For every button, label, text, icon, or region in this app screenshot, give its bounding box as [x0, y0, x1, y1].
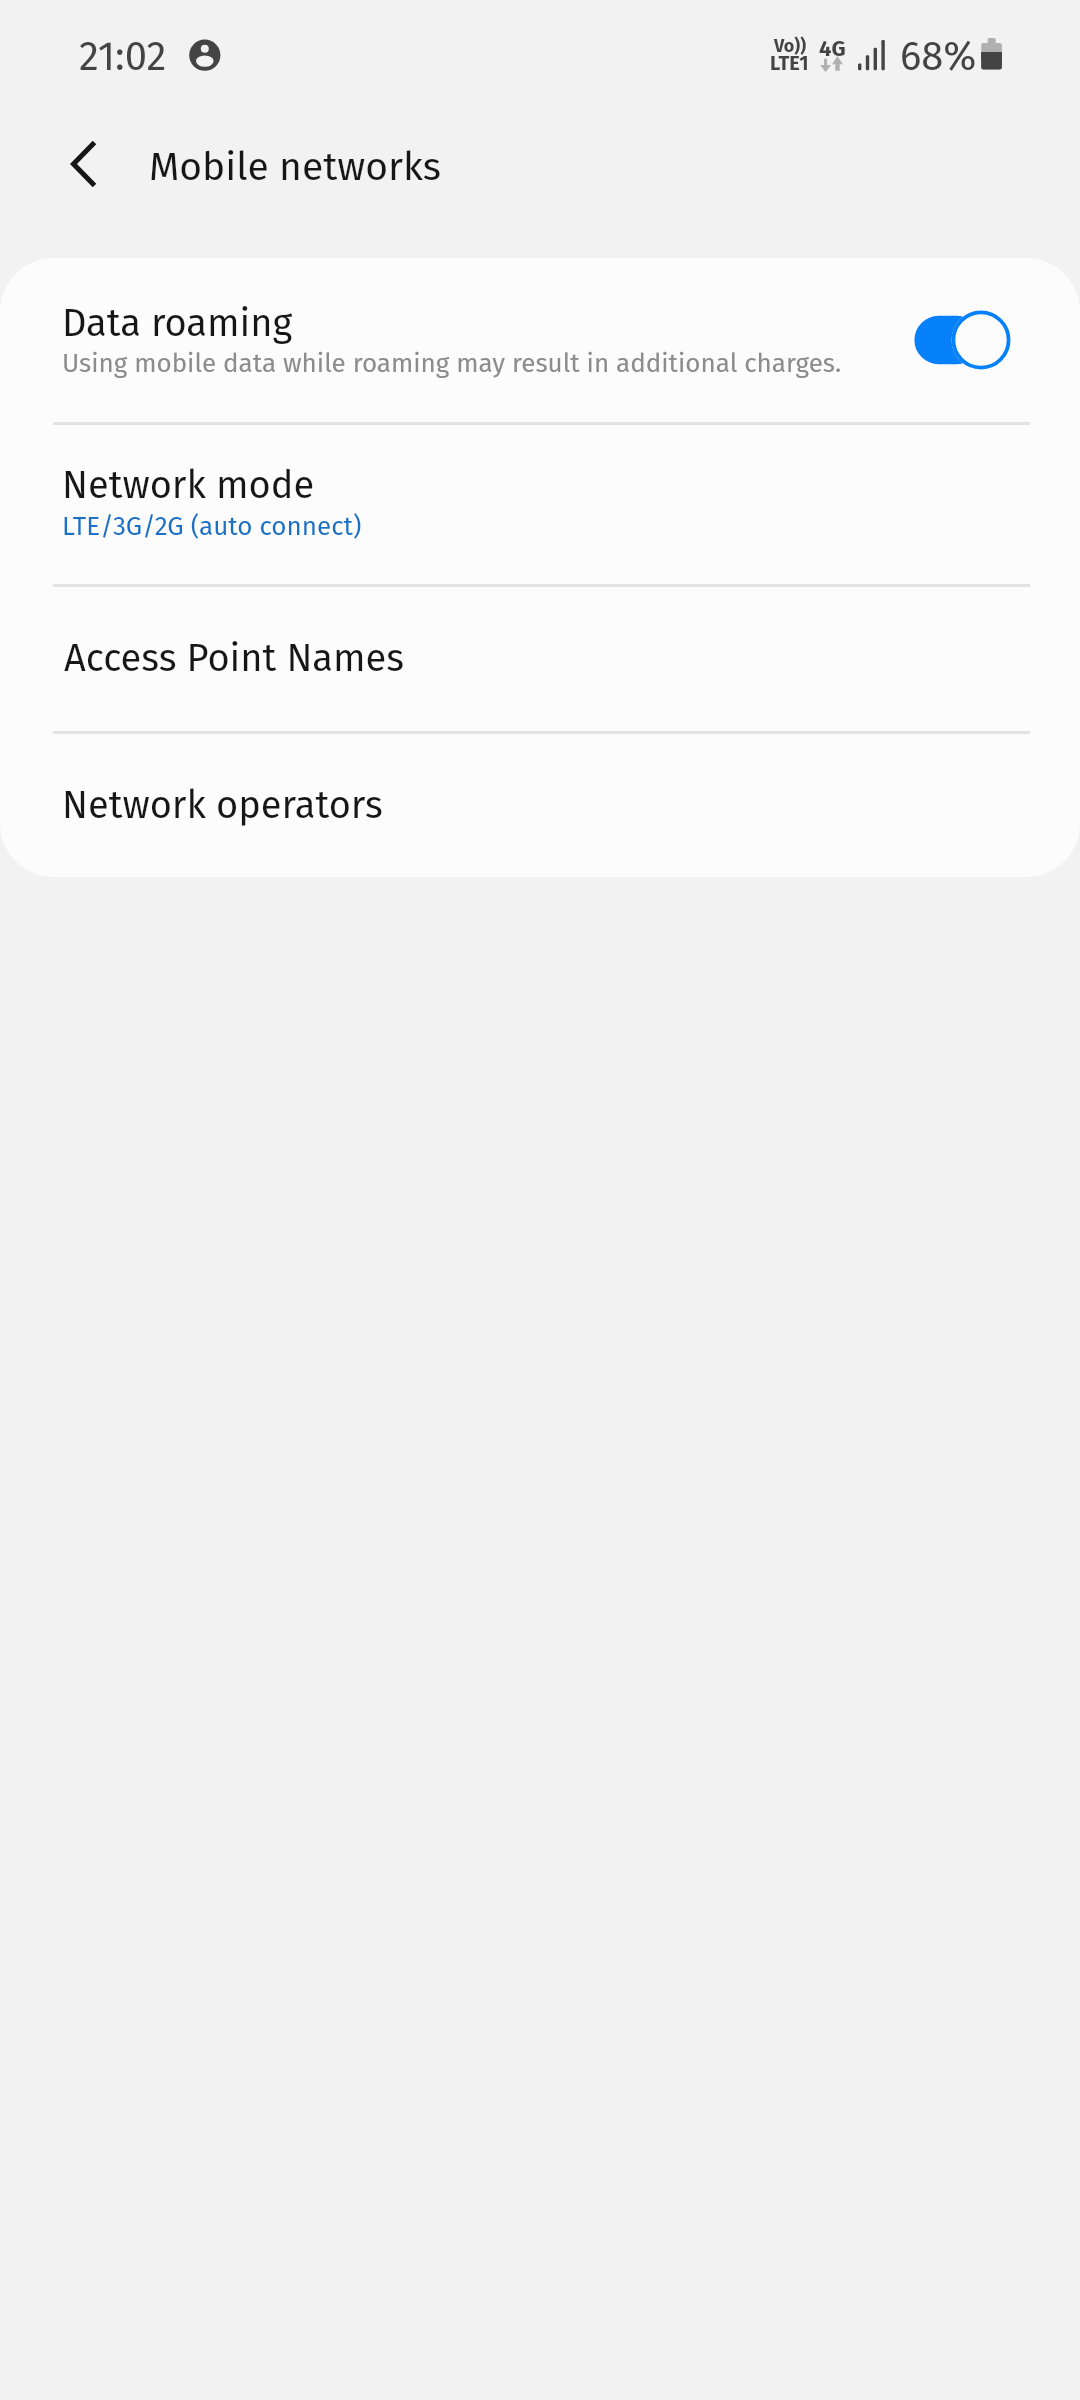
staticText: Network operators	[62, 782, 383, 828]
button[interactable]: Navigate up	[39, 119, 129, 209]
staticText: LTE/3G/2G (auto connect)	[62, 511, 362, 542]
staticText: Mobile networks	[149, 144, 442, 191]
staticText: Vo))	[774, 35, 807, 57]
button[interactable]: Network operators	[0, 733, 1080, 877]
staticText: LTE1	[770, 51, 809, 75]
staticText: 4G	[819, 35, 846, 61]
button[interactable]: Data roaming on	[901, 302, 1019, 378]
button[interactable]: Access Point Names	[0, 586, 1080, 731]
staticText: 21:02	[79, 33, 167, 81]
staticText: 68%	[900, 33, 977, 81]
staticText: Data roaming	[62, 300, 293, 346]
button[interactable]: Network mode	[0, 424, 1080, 584]
staticText: Access Point Names	[64, 635, 405, 681]
button[interactable]: Data roaming	[0, 258, 1080, 422]
staticText: Using mobile data while roaming may resu…	[62, 348, 842, 379]
staticText: Network mode	[62, 462, 315, 508]
